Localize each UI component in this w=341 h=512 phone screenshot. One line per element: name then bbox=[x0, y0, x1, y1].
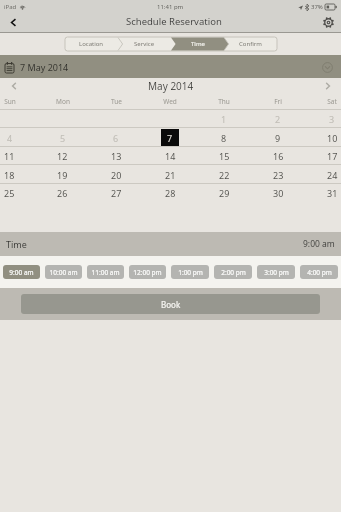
button[interactable]: 5 bbox=[36, 128, 89, 147]
button[interactable]: 3:00 pm bbox=[257, 265, 295, 279]
button[interactable]: Book bbox=[21, 294, 320, 314]
button[interactable] bbox=[0, 110, 36, 128]
staticText: 7 May 2014 bbox=[20, 61, 69, 73]
staticText: 1:00 pm bbox=[178, 268, 203, 277]
staticText: Service bbox=[134, 40, 155, 48]
button[interactable]: 18 bbox=[0, 165, 36, 184]
button[interactable]: 20 bbox=[89, 165, 143, 184]
button[interactable]: 2:00 pm bbox=[214, 265, 252, 279]
button[interactable]: 22 bbox=[197, 165, 251, 184]
button[interactable]: 4:00 pm bbox=[300, 265, 338, 279]
button[interactable]: 30 bbox=[251, 184, 305, 202]
button[interactable]: Back bbox=[0, 13, 26, 32]
button[interactable]: 6 bbox=[89, 128, 143, 147]
button[interactable]: 29 bbox=[197, 184, 251, 202]
staticText: Sat bbox=[327, 97, 337, 106]
button[interactable]: Time bbox=[171, 37, 224, 51]
staticText: 11:00 am bbox=[91, 268, 120, 277]
button[interactable]: 17 bbox=[305, 147, 341, 165]
button[interactable]: 13 bbox=[89, 147, 143, 165]
staticText: 2 bbox=[275, 113, 281, 125]
staticText: 2:00 pm bbox=[221, 268, 246, 277]
staticText: Book bbox=[161, 299, 181, 310]
staticText: Fri bbox=[274, 97, 282, 106]
button[interactable]: 23 bbox=[251, 165, 305, 184]
staticText: Time bbox=[6, 238, 27, 250]
button[interactable]: 4 bbox=[0, 128, 36, 147]
staticText: 11:41 pm bbox=[157, 3, 184, 11]
button[interactable]: 31 bbox=[305, 184, 341, 202]
staticText: 21 bbox=[165, 169, 176, 181]
staticText: 28 bbox=[165, 187, 176, 199]
staticText: 23 bbox=[273, 169, 284, 181]
button[interactable]: 19 bbox=[36, 165, 89, 184]
button[interactable]: 27 bbox=[89, 184, 143, 202]
button[interactable]: 10 bbox=[305, 128, 341, 147]
staticText: 5 bbox=[60, 132, 66, 144]
staticText: 3:00 pm bbox=[264, 268, 289, 277]
button[interactable]: 21 bbox=[143, 165, 197, 184]
button[interactable]: 3 bbox=[305, 110, 341, 128]
staticText: iPad bbox=[4, 3, 17, 11]
staticText: Wed bbox=[163, 97, 177, 106]
staticText: 31 bbox=[327, 187, 338, 199]
button[interactable]: Settings bbox=[315, 13, 341, 32]
staticText: 37% bbox=[311, 3, 323, 11]
button[interactable]: 24 bbox=[305, 165, 341, 184]
button[interactable]: Confirm bbox=[224, 37, 277, 51]
staticText: 29 bbox=[219, 187, 230, 199]
staticText: 12:00 pm bbox=[133, 268, 162, 277]
staticText: 4 bbox=[7, 132, 13, 144]
staticText: 10 bbox=[327, 132, 338, 144]
button[interactable]: 10:00 am bbox=[45, 265, 82, 279]
button[interactable]: Next month bbox=[320, 78, 335, 93]
staticText: 20 bbox=[111, 169, 122, 181]
staticText: Location bbox=[79, 40, 104, 48]
staticText: Tue bbox=[111, 97, 122, 106]
staticText: 1 bbox=[221, 113, 227, 125]
button[interactable]: 7 bbox=[143, 128, 197, 147]
button[interactable]: 26 bbox=[36, 184, 89, 202]
button[interactable]: Previous month bbox=[6, 78, 21, 93]
button[interactable] bbox=[89, 110, 143, 128]
button[interactable]: 25 bbox=[0, 184, 36, 202]
button[interactable]: 16 bbox=[251, 147, 305, 165]
button[interactable]: 28 bbox=[143, 184, 197, 202]
button[interactable]: Location bbox=[65, 37, 118, 51]
button[interactable]: 9 bbox=[251, 128, 305, 147]
staticText: 4:00 pm bbox=[307, 268, 332, 277]
staticText: May 2014 bbox=[148, 79, 194, 93]
button[interactable]: 8 bbox=[197, 128, 251, 147]
staticText: 9:00 am bbox=[303, 238, 335, 250]
button[interactable]: 11 bbox=[0, 147, 36, 165]
button[interactable]: 15 bbox=[197, 147, 251, 165]
button[interactable]: 1:00 pm bbox=[171, 265, 209, 279]
button[interactable]: 1 bbox=[197, 110, 251, 128]
staticText: 15 bbox=[219, 150, 230, 162]
button[interactable]: 9:00 am bbox=[3, 265, 40, 279]
staticText: 18 bbox=[4, 169, 15, 181]
staticText: Confirm bbox=[239, 40, 262, 48]
staticText: 26 bbox=[57, 187, 68, 199]
button[interactable]: 12 bbox=[36, 147, 89, 165]
staticText: 16 bbox=[273, 150, 284, 162]
staticText: Mon bbox=[56, 97, 70, 106]
button[interactable]: Expand date picker bbox=[321, 61, 333, 73]
staticText: 30 bbox=[273, 187, 284, 199]
button[interactable]: Service bbox=[118, 37, 171, 51]
staticText: 3 bbox=[329, 113, 335, 125]
staticText: Thu bbox=[218, 97, 230, 106]
staticText: Time bbox=[191, 40, 205, 48]
button[interactable]: 2 bbox=[251, 110, 305, 128]
staticText: Sun bbox=[4, 97, 16, 106]
button[interactable]: 14 bbox=[143, 147, 197, 165]
button[interactable] bbox=[143, 110, 197, 128]
staticText: 27 bbox=[111, 187, 122, 199]
button[interactable]: 11:00 am bbox=[87, 265, 124, 279]
button[interactable] bbox=[36, 110, 89, 128]
button[interactable]: 12:00 pm bbox=[129, 265, 166, 279]
staticText: 7 bbox=[167, 132, 173, 144]
staticText: 22 bbox=[219, 169, 230, 181]
staticText: 8 bbox=[221, 132, 227, 144]
staticText: 11 bbox=[4, 150, 15, 162]
